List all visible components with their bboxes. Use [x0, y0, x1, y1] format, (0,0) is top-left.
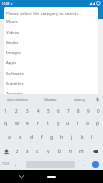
staticText: Ubuntu	[44, 97, 57, 102]
button[interactable]: .	[79, 158, 88, 170]
staticText: l	[91, 134, 93, 141]
button[interactable]: o	[83, 116, 93, 130]
staticText: n	[69, 148, 73, 155]
button[interactable]: g	[47, 130, 57, 144]
staticText: ubuntulative	[7, 97, 28, 102]
button[interactable]: Search	[92, 161, 99, 168]
button[interactable]: Videos	[4, 27, 98, 37]
staticText: t	[47, 120, 49, 127]
staticText: z	[16, 148, 19, 155]
button[interactable]: 3	[22, 105, 33, 116]
staticText: 8	[77, 108, 80, 114]
button[interactable]: 6	[53, 105, 63, 116]
button[interactable]: Subtitles	[4, 78, 98, 88]
button[interactable]: z	[12, 144, 22, 158]
button[interactable]: Backspace	[87, 144, 103, 158]
button[interactable]: x	[22, 144, 32, 158]
staticText: k	[81, 134, 84, 141]
staticText: 2	[15, 108, 18, 114]
button[interactable]: 0	[93, 105, 103, 116]
button[interactable]: j	[67, 130, 77, 144]
button[interactable]: v	[43, 144, 54, 158]
staticText: v	[47, 148, 50, 155]
button[interactable]: Apps	[4, 57, 98, 67]
staticText: 6	[57, 108, 60, 114]
button[interactable]: 2	[11, 105, 22, 116]
button[interactable]: n	[65, 144, 76, 158]
staticText: b	[58, 148, 62, 155]
button[interactable]: 4	[33, 105, 43, 116]
staticText: 1	[4, 108, 7, 114]
button[interactable]: Voice input	[92, 94, 103, 105]
button[interactable]: Ubuntu	[35, 94, 66, 105]
button[interactable]: i	[73, 116, 83, 130]
button[interactable]: Music	[4, 16, 98, 26]
button[interactable]: r	[33, 116, 43, 130]
staticText: u	[66, 120, 70, 127]
button[interactable]: k	[77, 130, 87, 144]
button[interactable]: Software	[4, 68, 98, 78]
button[interactable]: q	[0, 116, 11, 130]
button[interactable]: c	[32, 144, 43, 158]
button[interactable]: u	[63, 116, 73, 130]
staticText: 0	[97, 108, 100, 114]
staticText: a	[8, 134, 11, 141]
button[interactable]: f	[37, 130, 47, 144]
button[interactable]: 5	[43, 105, 53, 116]
button[interactable]: 1	[0, 105, 11, 116]
staticText: e	[26, 120, 29, 127]
button[interactable]: ,	[10, 158, 21, 170]
button[interactable]: y	[53, 116, 63, 130]
staticText: Music	[6, 18, 18, 24]
staticText: Books	[6, 39, 19, 45]
button[interactable]: Shift	[0, 144, 12, 158]
button[interactable]: e	[22, 116, 33, 130]
staticText: Videos	[6, 29, 20, 35]
staticText: r	[37, 120, 40, 127]
staticText: Images	[6, 49, 22, 55]
staticText: ,	[15, 161, 17, 167]
staticText: p	[96, 120, 100, 127]
staticText: Subtitles	[6, 80, 24, 86]
button[interactable]: h	[57, 130, 67, 144]
button[interactable]: ubang	[66, 94, 92, 105]
button[interactable]: 8	[73, 105, 83, 116]
staticText: Software	[6, 70, 24, 76]
staticText: Apps	[6, 59, 17, 65]
staticText: o	[86, 120, 90, 127]
button[interactable]: s	[15, 130, 26, 144]
staticText: 11:05	[2, 2, 10, 6]
staticText: i	[77, 120, 79, 127]
staticText: ubang	[74, 97, 85, 102]
staticText: Torrents	[6, 90, 23, 96]
staticText: y	[57, 120, 60, 127]
button[interactable]: ubuntulative	[0, 94, 35, 105]
button[interactable]: 7	[63, 105, 73, 116]
staticText: m	[79, 148, 84, 155]
staticText: j	[71, 134, 73, 141]
button[interactable]: b	[54, 144, 65, 158]
button[interactable]: t	[43, 116, 53, 130]
button[interactable]: w	[11, 116, 22, 130]
staticText: g	[50, 134, 54, 141]
staticText: q	[4, 120, 8, 127]
staticText: f	[41, 134, 43, 141]
button[interactable]: ?123	[0, 158, 10, 170]
button[interactable]: m	[76, 144, 87, 158]
staticText: s	[19, 134, 22, 141]
staticText: 3	[26, 108, 29, 114]
button[interactable]: l	[87, 130, 97, 144]
button[interactable]: Images	[4, 47, 98, 57]
button[interactable]: Torrents	[4, 88, 98, 97]
button[interactable]: p	[93, 116, 103, 130]
staticText: 9	[87, 108, 90, 114]
button[interactable]: Books	[4, 37, 98, 47]
button[interactable]: d	[26, 130, 37, 144]
staticText: h	[60, 134, 64, 141]
button[interactable]: 9	[83, 105, 93, 116]
button[interactable]: Hide keyboard	[18, 173, 25, 180]
staticText: 7	[67, 108, 70, 114]
staticText: ?123	[2, 162, 9, 166]
button[interactable]: a	[4, 130, 15, 144]
